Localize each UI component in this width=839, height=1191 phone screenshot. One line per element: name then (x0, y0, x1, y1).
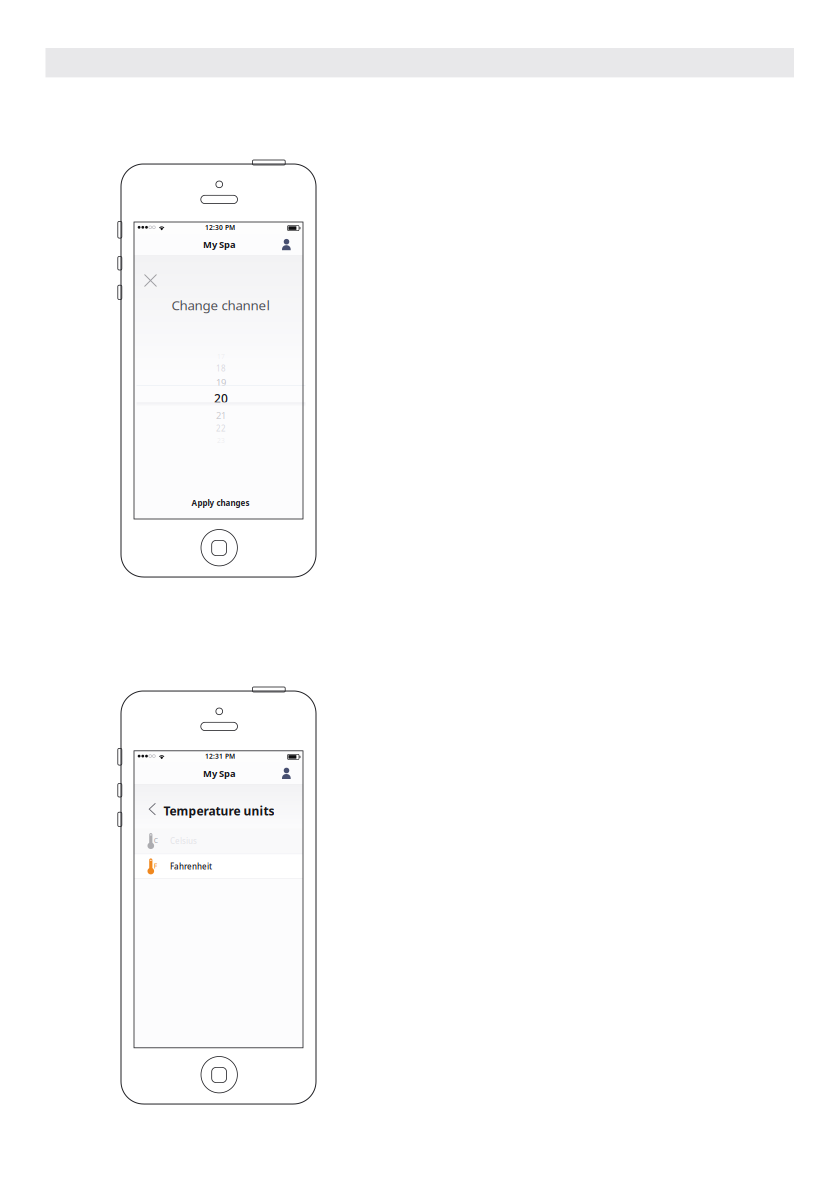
button[interactable]: Temperature units (134, 796, 303, 824)
staticText: 18 (216, 363, 226, 374)
button[interactable]: Account (278, 234, 298, 254)
button[interactable]: F (134, 854, 303, 878)
staticText: F (154, 861, 158, 870)
staticText: 19 (216, 376, 226, 388)
button[interactable]: Close (140, 270, 160, 290)
staticText: Apply changes (191, 498, 249, 508)
staticText: 21 (216, 409, 226, 421)
staticText: My Spa (203, 767, 236, 779)
staticText: My Spa (203, 238, 236, 251)
staticText: C (154, 836, 158, 845)
staticText: 20 (214, 390, 228, 406)
staticText: 12:30 PM (205, 223, 235, 232)
staticText: 23 (217, 436, 225, 445)
staticText: 22 (216, 423, 226, 434)
staticText: Change channel (171, 296, 269, 314)
staticText: Temperature units (163, 803, 274, 819)
staticText: Fahrenheit (170, 861, 212, 872)
button[interactable]: Account (278, 763, 298, 783)
staticText: 12:31 PM (205, 752, 235, 761)
staticText: Celsius (170, 836, 197, 846)
button[interactable]: C (134, 828, 303, 854)
button[interactable]: Apply changes (136, 495, 305, 511)
